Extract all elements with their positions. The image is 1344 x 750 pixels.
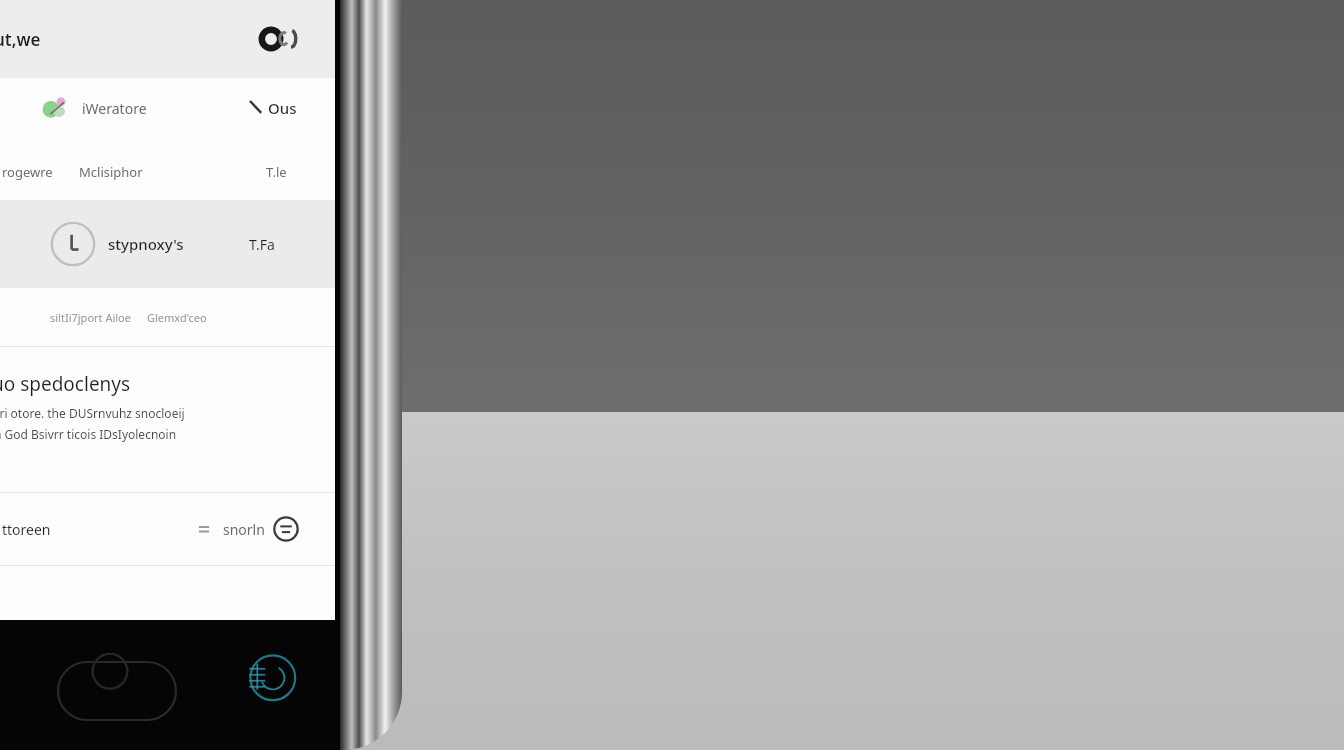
button[interactable]: ttoreen: [0, 493, 335, 565]
staticText: ut,we: [0, 28, 41, 51]
button[interactable]: Indicator: [242, 652, 298, 708]
button[interactable]: siltIi7jport Ailoe: [0, 288, 335, 346]
staticText: siltIi7jport Ailoe: [50, 310, 131, 325]
button[interactable]: ut,we: [0, 0, 335, 78]
other: Profile: [50, 221, 96, 267]
staticText: stypnoxy's: [108, 234, 184, 254]
staticText: Glemxd'ceo: [147, 310, 207, 325]
staticText: ra God Bsivrr ticois IDsIyolecnoin: [0, 426, 177, 442]
button[interactable]: iWeratore: [0, 78, 335, 138]
button[interactable]: rogewre: [0, 144, 335, 200]
staticText: rogewre: [2, 163, 53, 181]
staticText: uo spedoclenys: [0, 371, 131, 397]
button[interactable]: Profile: [0, 200, 335, 288]
staticText: Mclisiphor: [79, 163, 143, 181]
button[interactable]: Account: [257, 17, 301, 61]
staticText: iWeratore: [82, 99, 147, 118]
staticText: wri otore. the DUSrnvuhz snocloeij: [0, 405, 185, 421]
button[interactable]: uo spedoclenys: [0, 347, 335, 492]
staticText: T.Fa: [249, 235, 275, 254]
staticText: snorln: [223, 520, 265, 539]
button[interactable]: Home: [58, 662, 176, 720]
other: More: [273, 516, 299, 542]
staticText: Ous: [268, 98, 297, 118]
staticText: T.le: [266, 163, 287, 181]
staticText: ttoreen: [2, 520, 51, 539]
